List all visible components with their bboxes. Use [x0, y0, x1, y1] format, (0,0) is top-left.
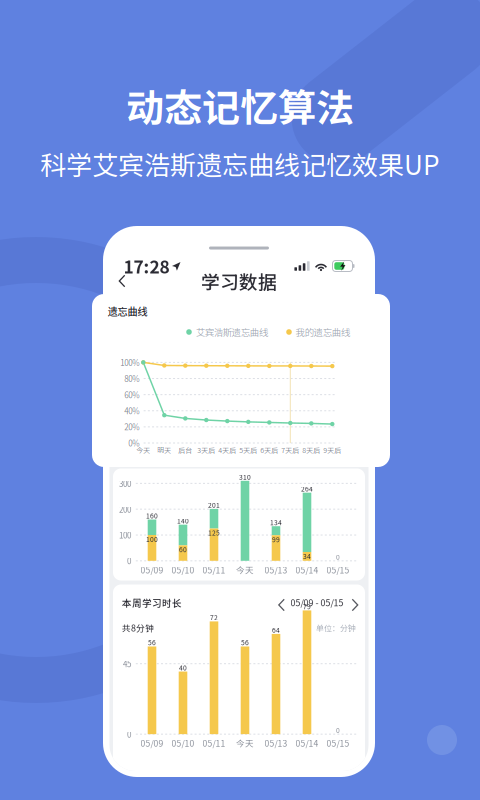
staticText: 我的遗忘曲线 — [296, 325, 350, 339]
staticText: 60% — [124, 389, 139, 400]
staticText: 80% — [124, 373, 139, 384]
staticText: 05/13 — [264, 564, 287, 576]
staticText: 264 — [301, 484, 313, 494]
staticText: 后台 — [178, 445, 192, 455]
staticText: 6天后 — [260, 445, 278, 455]
staticText: 56 — [148, 638, 156, 647]
staticText: 8天后 — [302, 445, 320, 455]
staticText: 明天 — [157, 445, 171, 455]
staticText: 60 — [179, 544, 187, 554]
staticText: 40% — [124, 405, 139, 417]
staticText: 160 — [146, 511, 158, 520]
staticText: 单位：分钟 — [316, 622, 356, 634]
staticText: 05/09 — [140, 737, 163, 749]
staticText: 艾宾浩斯遗忘曲线 — [196, 325, 268, 339]
staticText: 学习数据 — [201, 267, 277, 294]
staticText: 科学艾宾浩斯遗忘曲线记忆效果UP — [40, 145, 440, 182]
staticText: 100% — [120, 357, 139, 368]
staticText: 今天 — [136, 445, 150, 455]
staticText: 今天 — [236, 564, 254, 576]
staticText: 本周学习时长 — [122, 595, 182, 609]
staticText: 0 — [127, 555, 131, 567]
staticText: 125 — [208, 528, 220, 537]
staticText: 100 — [146, 534, 158, 544]
staticText: 05/15 — [326, 737, 349, 749]
staticText: 64 — [272, 625, 280, 635]
staticText: 79 — [303, 602, 311, 611]
staticText: 05/13 — [264, 737, 287, 749]
staticText: 72 — [210, 613, 218, 622]
staticText: 今天 — [236, 737, 254, 749]
staticText: 99 — [272, 534, 280, 544]
staticText: 201 — [208, 500, 220, 510]
staticText: 140 — [177, 516, 189, 526]
staticText: 0 — [336, 552, 340, 562]
staticText: 0 — [127, 728, 131, 740]
staticText: 3天后 — [197, 445, 215, 455]
staticText: 05/11 — [202, 737, 225, 749]
staticText: 05/09 - 05/15 — [290, 596, 343, 609]
staticText: 134 — [270, 517, 282, 527]
staticText: 0% — [128, 437, 139, 449]
staticText: 遗忘曲线 — [107, 304, 147, 318]
staticText: 200 — [119, 503, 131, 515]
staticText: 7天后 — [281, 445, 299, 455]
staticText: 动态记忆算法 — [126, 78, 354, 133]
staticText: 40 — [179, 663, 187, 672]
staticText: 05/09 — [140, 564, 163, 576]
staticText: 310 — [239, 472, 251, 482]
staticText: 5天后 — [239, 445, 257, 455]
button[interactable]: Back — [109, 269, 134, 292]
staticText: 17:28 — [123, 253, 169, 279]
button[interactable]: 05/09 - 05/15 — [278, 596, 356, 609]
staticText: 20% — [124, 421, 139, 433]
staticText: 05/14 — [295, 564, 318, 576]
staticText: 45 — [123, 658, 131, 669]
staticText: 4天后 — [218, 445, 236, 455]
staticText: 05/15 — [326, 564, 349, 576]
staticText: 05/10 — [171, 737, 194, 749]
staticText: 56 — [241, 638, 249, 647]
staticText: 100 — [119, 529, 131, 541]
staticText: 共8分钟 — [122, 621, 154, 634]
staticText: 05/11 — [202, 564, 225, 576]
staticText: 0 — [336, 725, 340, 735]
staticText: 05/10 — [171, 564, 194, 576]
staticText: 9天后 — [323, 445, 341, 455]
staticText: 34 — [303, 551, 311, 561]
staticText: 300 — [119, 478, 131, 489]
staticText: 05/14 — [295, 737, 318, 749]
